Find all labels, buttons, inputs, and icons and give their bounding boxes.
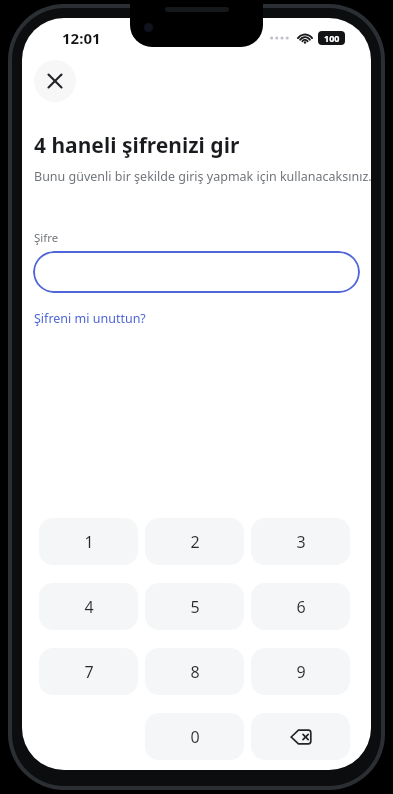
staticText: 8 xyxy=(190,661,200,683)
staticText: 7 xyxy=(84,661,94,683)
button[interactable]: 1 xyxy=(39,518,138,565)
staticText: 6 xyxy=(296,596,306,618)
staticText: 12:01 xyxy=(62,28,101,48)
button[interactable]: 0 xyxy=(145,713,244,760)
staticText: Şifreni mi unuttun? xyxy=(34,310,146,327)
button[interactable]: 7 xyxy=(39,648,138,695)
staticText: 3 xyxy=(296,531,306,553)
staticText: Şifre xyxy=(34,230,59,246)
staticText: 5 xyxy=(190,596,200,618)
staticText: 100 xyxy=(324,32,340,44)
button[interactable]: 4 xyxy=(39,583,138,630)
staticText: 1 xyxy=(84,531,94,553)
button[interactable]: 8 xyxy=(145,648,244,695)
staticText: 4 haneli şifrenizi gir xyxy=(34,131,240,160)
button[interactable]: 3 xyxy=(251,518,350,565)
button[interactable]: Sil xyxy=(251,713,350,760)
staticText: 2 xyxy=(190,531,200,553)
button[interactable]: 2 xyxy=(145,518,244,565)
staticText: 4 xyxy=(84,596,94,618)
staticText: Bunu güvenli bir şekilde giriş yapmak iç… xyxy=(34,168,371,185)
button[interactable]: Kapat xyxy=(34,60,76,102)
staticText: 0 xyxy=(190,726,200,748)
button[interactable]: 5 xyxy=(145,583,244,630)
button[interactable]: Şifreni mi unuttun? xyxy=(33,308,147,329)
button[interactable]: 6 xyxy=(251,583,350,630)
staticText: 9 xyxy=(296,661,306,683)
button[interactable]: Şifre alanı xyxy=(33,251,360,293)
button[interactable]: 9 xyxy=(251,648,350,695)
